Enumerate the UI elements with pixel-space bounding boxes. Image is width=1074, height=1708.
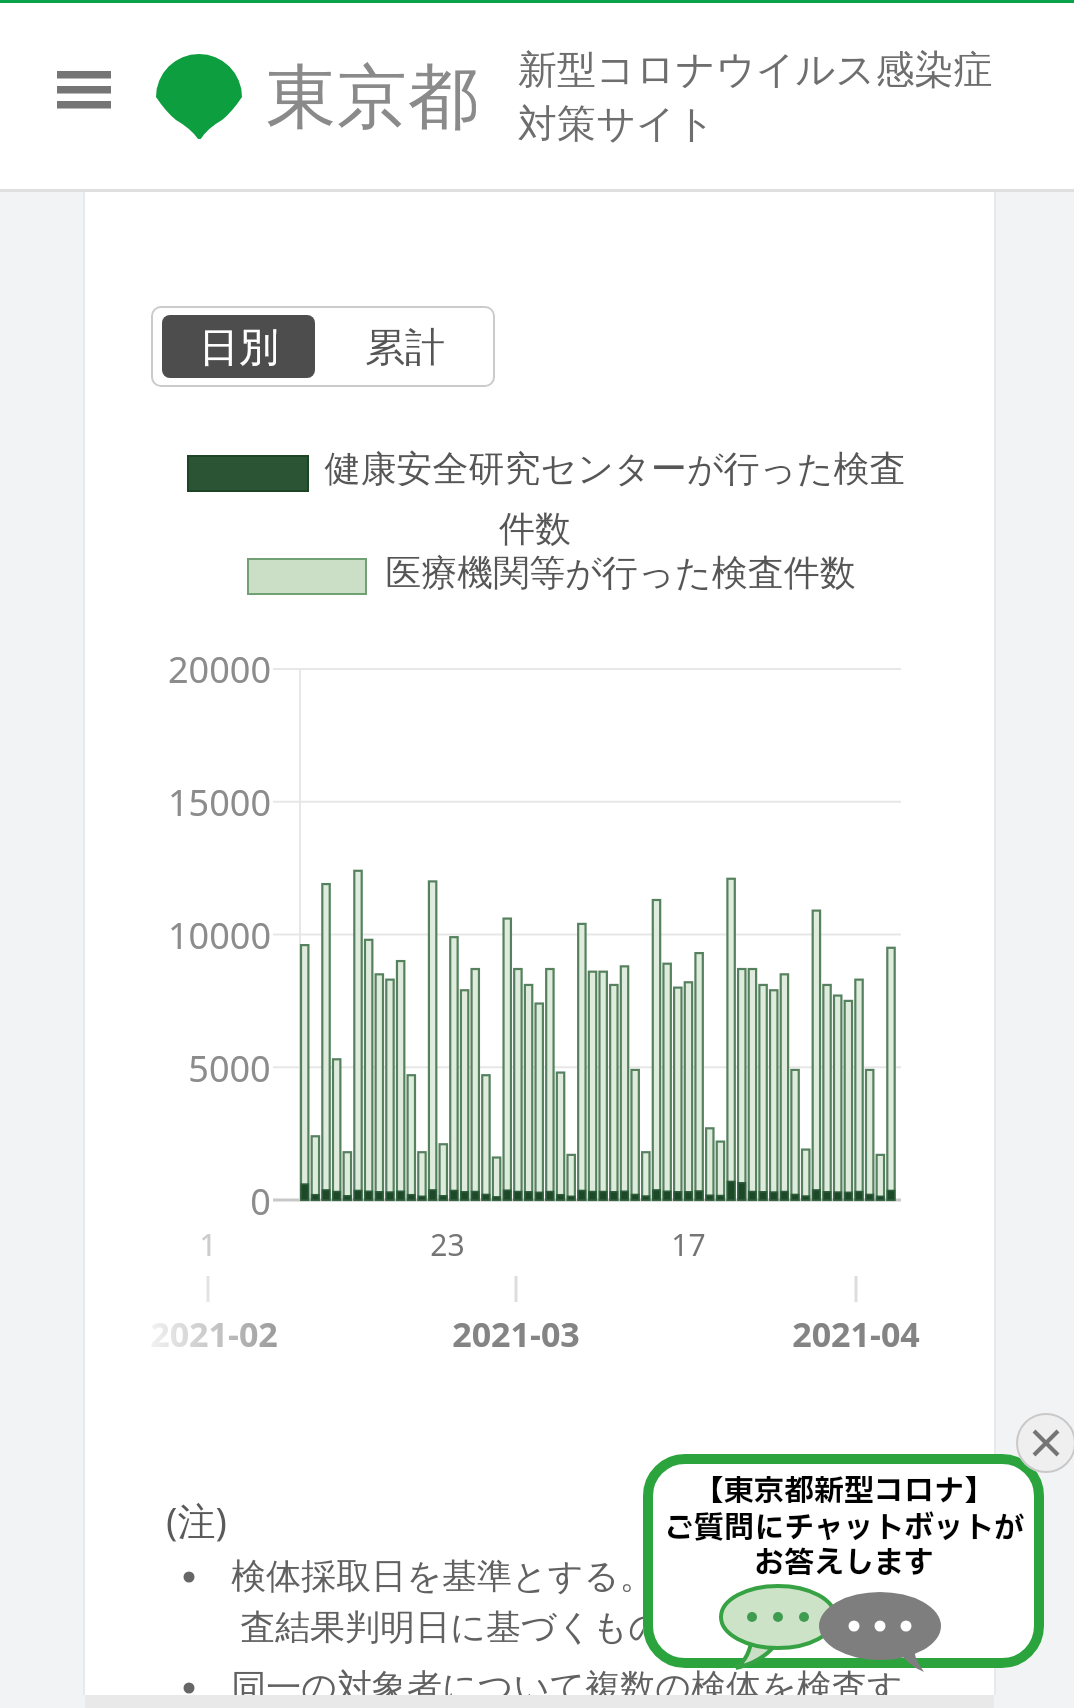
button[interactable]: 累計	[315, 306, 495, 387]
button[interactable]	[45, 60, 123, 126]
staticText: 2021-02	[150, 1311, 278, 1355]
staticText: 1	[199, 1224, 217, 1265]
staticText: 査結果判明日に基づくものを含む。	[240, 1605, 806, 1649]
staticText: 件数	[499, 506, 571, 551]
staticText: 0	[250, 1177, 271, 1225]
staticText: 新型コロナウイルス感染症 対策サイト	[518, 45, 993, 149]
staticText: ご質問にチャットボットが	[664, 1506, 1024, 1550]
staticText: 17	[671, 1224, 706, 1265]
staticText: 15000	[168, 778, 271, 826]
staticText: 累計	[365, 322, 445, 372]
staticText: 日別	[199, 322, 279, 372]
staticText: 10000	[168, 911, 271, 959]
staticText: 医療機関等が行った検査件数	[385, 550, 856, 595]
staticText: 健康安全研究センターが行った検査	[324, 446, 906, 491]
staticText: 東京都	[266, 54, 479, 140]
staticText: (注)	[166, 1494, 227, 1546]
button[interactable]	[1016, 1413, 1074, 1473]
staticText: 23	[430, 1224, 465, 1265]
staticText: 20000	[168, 645, 271, 693]
staticText: 2021-04	[792, 1311, 920, 1355]
staticText: 検体採取日を基準とする。ただし一部は検	[231, 1554, 903, 1598]
button[interactable]: 日別	[162, 315, 315, 378]
staticText: お答えします	[754, 1541, 934, 1585]
button[interactable]	[643, 1454, 1044, 1668]
staticText: 2021-03	[452, 1311, 580, 1355]
staticText: 5000	[188, 1044, 271, 1092]
staticText: 同一の対象者について複数の検体を検査す	[231, 1665, 903, 1708]
staticText: 【東京都新型コロナ】	[694, 1469, 994, 1513]
